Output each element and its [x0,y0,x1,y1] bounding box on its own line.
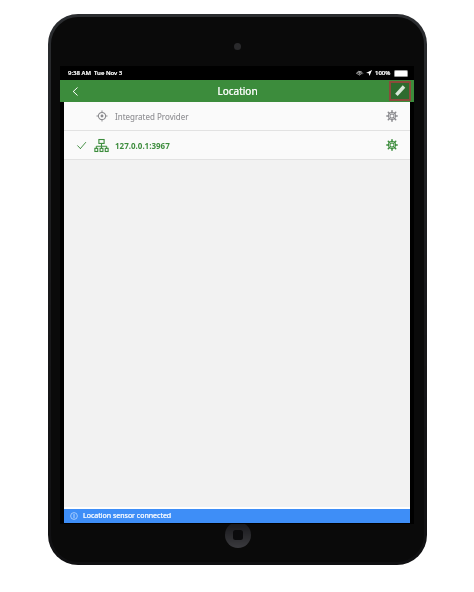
button[interactable]: Location sensor connected [64,509,410,523]
staticText: Integrated Provider [115,111,189,122]
button[interactable]: Provider settings [378,102,406,130]
staticText: 100% [375,69,391,77]
staticText: 127.0.0.1:3967 [115,140,170,151]
button[interactable]: 127.0.0.1:3967 [64,131,410,159]
staticText: Location [217,84,258,98]
button[interactable]: Connection settings [378,131,406,159]
button[interactable]: Edit [390,82,410,100]
button[interactable]: Back [60,80,90,102]
button[interactable]: Integrated Provider [64,102,410,130]
staticText: 9:38 AM Tue Nov 3 [68,69,123,77]
staticText: Location sensor connected [83,511,172,521]
